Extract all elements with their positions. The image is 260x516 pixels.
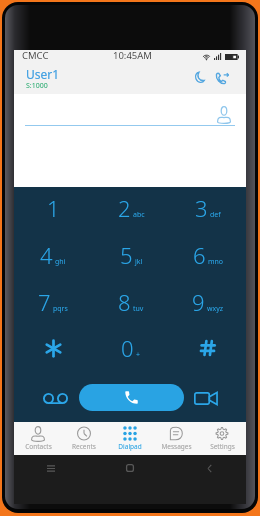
button[interactable]: 5 bbox=[96, 235, 166, 275]
staticText: 9 bbox=[192, 287, 205, 317]
button[interactable]: 2 bbox=[96, 188, 166, 228]
staticText: 5 bbox=[120, 240, 133, 270]
button[interactable]: 1 bbox=[18, 188, 88, 228]
button[interactable]: Call forwarding bbox=[212, 68, 232, 88]
staticText: 8 bbox=[118, 287, 131, 317]
staticText: 10:45AM bbox=[113, 49, 152, 62]
button[interactable]: Contacts bbox=[16, 422, 60, 455]
button[interactable] bbox=[173, 328, 243, 368]
button[interactable]: Do not disturb bbox=[190, 68, 210, 88]
button[interactable]: 6 bbox=[173, 235, 243, 275]
staticText: + bbox=[136, 350, 141, 360]
staticText: 4 bbox=[40, 240, 53, 270]
staticText: abc bbox=[133, 210, 145, 220]
button[interactable]: 8 bbox=[96, 282, 166, 322]
staticText: 2 bbox=[118, 193, 131, 223]
button[interactable]: Back bbox=[198, 457, 220, 479]
staticText: Dialpad bbox=[118, 442, 142, 451]
staticText: User1 bbox=[26, 66, 60, 82]
staticText: Settings bbox=[210, 442, 235, 451]
staticText: 6 bbox=[193, 240, 206, 270]
button[interactable]: Home bbox=[119, 457, 141, 479]
button[interactable]: Messages bbox=[154, 422, 198, 455]
staticText: 3 bbox=[195, 193, 208, 223]
button[interactable]: Video call bbox=[191, 383, 221, 413]
button[interactable]: 9 bbox=[173, 282, 243, 322]
staticText: mno bbox=[208, 257, 224, 267]
button[interactable]: 4 bbox=[18, 235, 88, 275]
staticText: ghi bbox=[55, 257, 66, 267]
button[interactable]: 7 bbox=[18, 282, 88, 322]
button[interactable]: Menu bbox=[40, 457, 62, 479]
staticText: pqrs bbox=[53, 304, 68, 314]
staticText: Messages bbox=[161, 442, 192, 451]
staticText: 0 bbox=[121, 333, 134, 363]
staticText: 7 bbox=[38, 287, 51, 317]
button[interactable]: Call bbox=[79, 384, 184, 411]
button[interactable]: Dialpad bbox=[108, 422, 152, 455]
button[interactable]: Contacts bbox=[214, 104, 234, 124]
button[interactable]: 3 bbox=[173, 188, 243, 228]
staticText: 1 bbox=[47, 193, 60, 223]
button[interactable]: 0 bbox=[96, 328, 166, 368]
staticText: def bbox=[210, 210, 221, 220]
button[interactable]: Settings bbox=[200, 422, 244, 455]
button[interactable] bbox=[18, 328, 88, 368]
button[interactable]: Recents bbox=[62, 422, 106, 455]
staticText: jkl bbox=[135, 257, 143, 267]
button[interactable]: Voicemail bbox=[40, 383, 70, 413]
staticText: CMCC bbox=[22, 49, 49, 62]
staticText: Contacts bbox=[25, 442, 52, 451]
staticText: wxyz bbox=[207, 304, 224, 314]
staticText: tuv bbox=[133, 304, 144, 314]
staticText: S:1000 bbox=[26, 81, 48, 91]
staticText: Recents bbox=[72, 442, 96, 451]
